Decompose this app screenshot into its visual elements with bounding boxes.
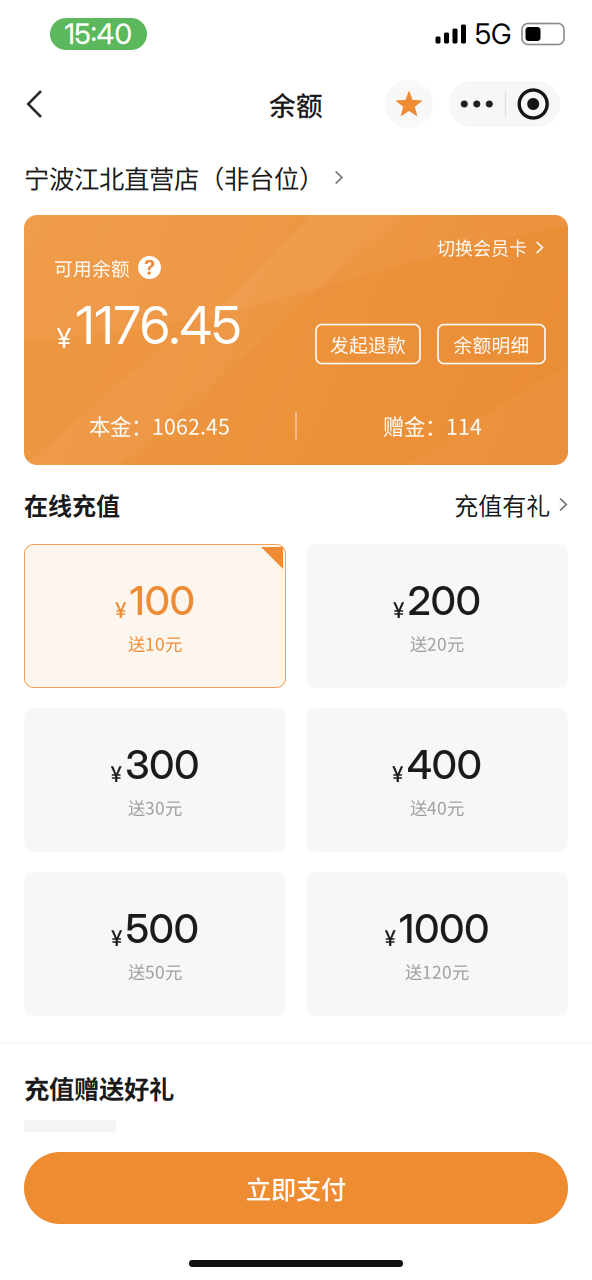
button[interactable]: Favorite — [385, 80, 433, 128]
staticText: ¥ — [57, 322, 71, 355]
staticText: 200 — [408, 576, 481, 625]
staticText: 送20元 — [410, 631, 464, 656]
button[interactable]: 宁波江北直营店（非台位） — [0, 140, 592, 215]
staticText: ¥ — [111, 926, 122, 951]
staticText: ¥ — [392, 762, 403, 787]
staticText: 余额明细 — [453, 330, 529, 357]
button[interactable]: 立即支付 — [24, 1152, 568, 1224]
staticText: 赠金：114 — [383, 410, 482, 441]
staticText: ¥ — [111, 762, 122, 787]
staticText: 立即支付 — [246, 1170, 346, 1206]
staticText: 5G — [475, 17, 511, 51]
staticText: 送40元 — [410, 795, 464, 820]
staticText: 500 — [126, 904, 199, 953]
staticText: 1176.45 — [76, 294, 242, 356]
staticText: ¥ — [115, 598, 126, 623]
staticText: 在线充值 — [24, 487, 120, 522]
staticText: 宁波江北直营店（非台位） — [24, 159, 324, 196]
button[interactable]: 切换会员卡 — [437, 254, 544, 281]
staticText: 400 — [407, 740, 482, 789]
button[interactable]: ¥ — [24, 708, 286, 852]
button[interactable]: ¥ — [24, 872, 286, 1016]
button[interactable]: 余额明细 — [438, 324, 545, 363]
staticText: 送50元 — [128, 959, 182, 984]
staticText: 发起退款 — [330, 330, 406, 357]
staticText: 300 — [125, 740, 199, 789]
staticText: 切换会员卡 — [437, 234, 527, 261]
staticText: 送30元 — [128, 795, 182, 820]
staticText: 充值赠送好礼 — [24, 1069, 174, 1106]
button[interactable]: ¥ — [306, 708, 568, 852]
staticText: ¥ — [393, 598, 404, 623]
staticText: 本金：1062.45 — [89, 410, 230, 441]
button[interactable]: ¥ — [306, 544, 568, 688]
staticText: 100 — [130, 576, 195, 625]
staticText: ¥ — [385, 926, 396, 951]
staticText: 送120元 — [405, 959, 469, 984]
staticText: ? — [144, 255, 155, 280]
button[interactable]: ¥ — [24, 544, 286, 688]
button[interactable]: 发起退款 — [316, 324, 420, 363]
staticText: 1000 — [399, 904, 489, 953]
button[interactable]: More options — [449, 81, 560, 127]
staticText: 15:40 — [64, 17, 132, 51]
staticText: 可用余额 — [54, 254, 130, 281]
staticText: 充值有礼 — [454, 487, 550, 522]
staticText: 送10元 — [128, 631, 182, 656]
staticText: 余额 — [269, 85, 323, 123]
button[interactable]: Back — [0, 80, 59, 127]
button[interactable]: ¥ — [306, 872, 568, 1016]
button[interactable]: 充值有礼 — [454, 487, 568, 522]
